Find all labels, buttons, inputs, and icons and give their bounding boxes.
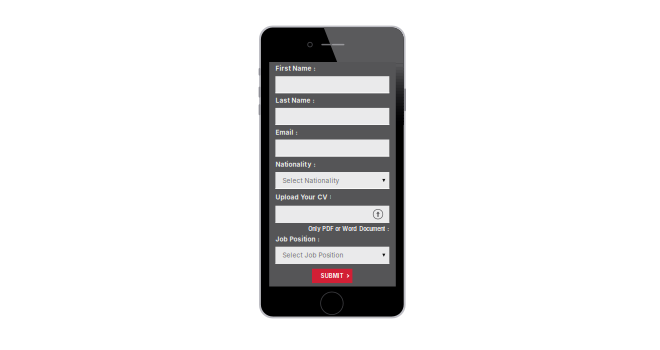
staticText: Word [342, 225, 357, 232]
staticText: SUBMIT [321, 272, 344, 279]
staticText: First Name : [275, 64, 315, 72]
staticText: Select Nationality [283, 176, 340, 184]
staticText: Job Position : [275, 235, 319, 243]
staticText: PDF [322, 225, 333, 232]
staticText: Select Job Position [283, 251, 344, 259]
staticText: Email : [275, 128, 297, 136]
staticText: Document [359, 225, 385, 232]
staticText: : [387, 225, 389, 232]
staticText: Nationality : [275, 160, 315, 168]
staticText: Only [308, 225, 320, 232]
staticText: or [335, 225, 340, 232]
button[interactable]: Select Nationality [275, 172, 389, 189]
button[interactable]: Upload file [373, 209, 383, 219]
staticText: Last Name : [275, 96, 314, 104]
button[interactable]: SUBMIT [312, 269, 352, 283]
staticText: Upload Your CV : [275, 193, 331, 201]
button[interactable]: Select Job Position [275, 247, 389, 264]
